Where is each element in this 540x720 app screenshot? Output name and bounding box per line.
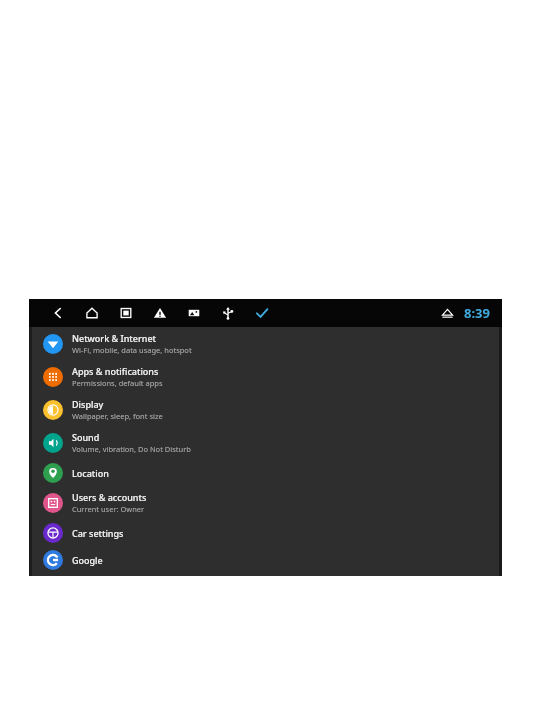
- staticText: Volume, vibration, Do Not Disturb: [72, 444, 191, 454]
- staticText: Wi-Fi, mobile, data usage, hotspot: [72, 345, 192, 355]
- button[interactable]: Warning: [152, 305, 168, 321]
- button[interactable]: Confirm: [254, 305, 270, 321]
- button[interactable]: Location: [29, 459, 502, 486]
- button[interactable]: Screenshot: [186, 305, 202, 321]
- staticText: Location: [72, 467, 109, 479]
- staticText: Sound: [72, 431, 100, 443]
- staticText: Permissions, default apps: [72, 378, 163, 388]
- button[interactable]: Car settings: [29, 519, 502, 546]
- staticText: Users & accounts: [72, 491, 147, 503]
- staticText: Wallpaper, sleep, font size: [72, 411, 163, 421]
- button[interactable]: Users & accounts: [29, 486, 502, 519]
- button[interactable]: Back: [50, 305, 66, 321]
- staticText: Network & Internet: [72, 332, 157, 344]
- staticText: 8:39: [464, 304, 490, 322]
- button[interactable]: Home: [84, 305, 100, 321]
- button[interactable]: Sound: [29, 426, 502, 459]
- staticText: Car settings: [72, 527, 124, 539]
- button[interactable]: Google: [29, 546, 502, 573]
- button[interactable]: USB: [220, 305, 236, 321]
- button[interactable]: Apps & notifications: [29, 360, 502, 393]
- staticText: Current user: Owner: [72, 504, 145, 514]
- staticText: Google: [72, 554, 103, 566]
- button[interactable]: Network & Internet: [29, 327, 502, 360]
- button[interactable]: Display: [29, 393, 502, 426]
- button[interactable]: Eject: [439, 305, 456, 322]
- button[interactable]: Recent apps: [118, 305, 134, 321]
- staticText: Display: [72, 398, 104, 410]
- staticText: Apps & notifications: [72, 365, 159, 377]
